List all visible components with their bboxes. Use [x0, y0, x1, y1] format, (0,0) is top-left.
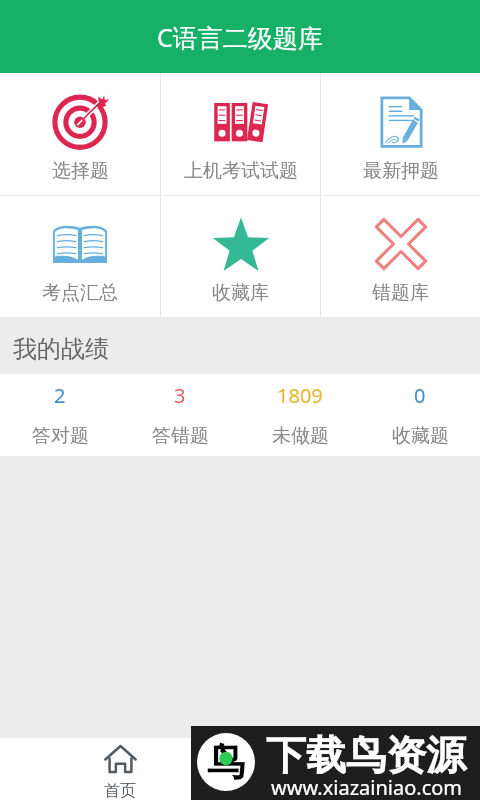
staticText: 2	[54, 382, 66, 409]
staticText: 下载鸟资源	[266, 730, 466, 780]
staticText: 收藏题	[392, 424, 449, 448]
staticText: 考点汇总	[42, 281, 118, 305]
staticText: C语言二级题库	[157, 20, 323, 54]
staticText: 最新押题	[363, 159, 439, 183]
staticText: 鸟	[207, 738, 245, 786]
button[interactable]: 1809	[240, 374, 360, 456]
button[interactable]: 选择题	[0, 73, 160, 195]
staticText: 0	[414, 382, 426, 409]
staticText: 选择题	[52, 159, 109, 183]
button[interactable]: 0	[360, 374, 480, 456]
staticText: 答错题	[152, 424, 209, 448]
staticText: 未做题	[272, 424, 329, 448]
button[interactable]: 上机考试试题	[161, 73, 320, 195]
staticText: 收藏库	[212, 281, 269, 305]
staticText: 错题库	[372, 281, 429, 305]
staticText: 上机考试试题	[184, 159, 298, 183]
staticText: 我的战绩	[13, 334, 109, 364]
button[interactable]: 最新押题	[321, 73, 480, 195]
button[interactable]: 收藏库	[161, 196, 320, 317]
button[interactable]: Home	[0, 738, 240, 800]
staticText: www.xiazainiao.com	[271, 774, 463, 800]
button[interactable]: 2	[0, 374, 120, 456]
button[interactable]: 错题库	[321, 196, 480, 317]
staticText: 首页	[104, 781, 136, 800]
staticText: 答对题	[32, 424, 89, 448]
staticText: 1809	[277, 382, 323, 409]
button[interactable]: 考点汇总	[0, 196, 160, 317]
button[interactable]: 3	[120, 374, 240, 456]
staticText: 3	[174, 382, 186, 409]
